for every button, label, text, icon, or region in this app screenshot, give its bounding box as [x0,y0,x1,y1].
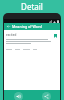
button[interactable]: Share [32,90,60,100]
staticText: Detail [21,1,43,12]
button[interactable]: Back [6,24,11,29]
staticText: Meaning of Word [12,24,42,29]
staticText: excited [6,33,17,37]
button[interactable]: Bookmark [52,33,58,39]
button[interactable]: Text to [4,90,32,100]
